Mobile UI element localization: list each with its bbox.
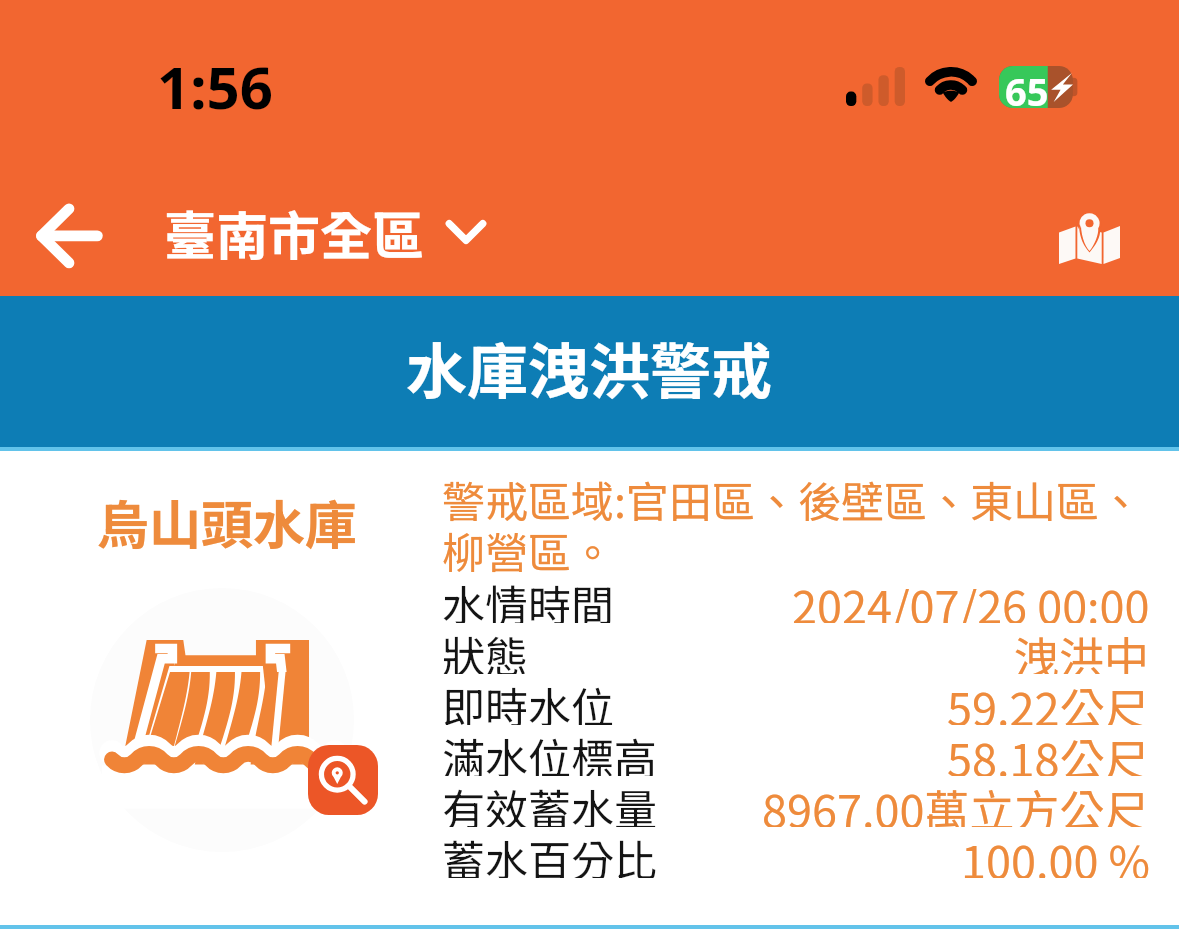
staticText: 100.00 % (961, 827, 1150, 878)
staticText: 59.22公尺 (947, 674, 1150, 725)
button[interactable]: Back (26, 192, 112, 278)
staticText: 2024/07/26 00:00 (792, 572, 1150, 623)
staticText: 烏山頭水庫 (97, 484, 358, 559)
button[interactable]: 即時水位 (442, 674, 1150, 725)
staticText: 水情時間 (442, 572, 614, 623)
staticText: 65 (1005, 65, 1049, 107)
staticText: 有效蓄水量 (442, 776, 657, 827)
button[interactable]: 有效蓄水量 (442, 776, 1150, 827)
staticText: 滿水位標高 (442, 725, 657, 776)
staticText: 58.18公尺 (947, 725, 1150, 776)
button[interactable]: Map (1059, 210, 1120, 264)
button[interactable]: 滿水位標高 (442, 725, 1150, 776)
button[interactable]: 狀態 (442, 623, 1150, 674)
staticText: 8967.00萬立方公尺 (762, 776, 1150, 827)
staticText: 狀態 (442, 623, 528, 674)
button[interactable]: Search location on map (308, 745, 378, 815)
button[interactable]: 蓄水百分比 (442, 827, 1150, 878)
staticText: 臺南市全區 (164, 195, 425, 270)
staticText: 即時水位 (442, 674, 614, 725)
staticText: 洩洪中 (1014, 623, 1150, 674)
button[interactable]: 臺南市全區 (164, 194, 486, 270)
staticText: 水庫洩洪警戒 (406, 323, 773, 411)
staticText: 1:56 (157, 47, 273, 126)
button[interactable]: 水情時間 (442, 572, 1150, 623)
staticText: 蓄水百分比 (442, 827, 657, 878)
staticText: 警戒區域:官田區、後壁區、東山區、柳營區。 (442, 468, 1142, 581)
